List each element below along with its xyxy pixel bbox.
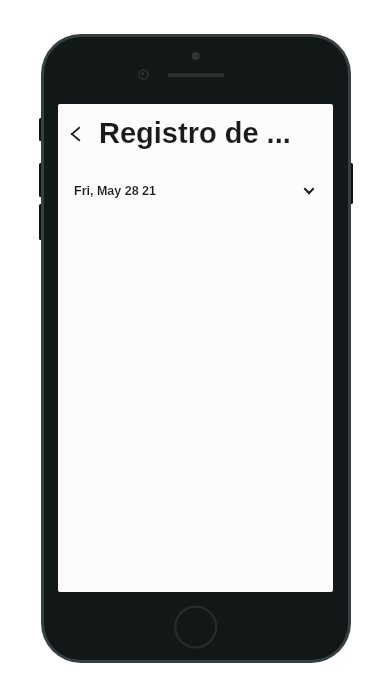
staticText: Registro de ...	[99, 117, 291, 149]
button[interactable]: Back	[58, 116, 93, 151]
button[interactable]: Fri, May 28 21	[58, 176, 333, 206]
staticText: Fri, May 28 21	[74, 184, 156, 198]
